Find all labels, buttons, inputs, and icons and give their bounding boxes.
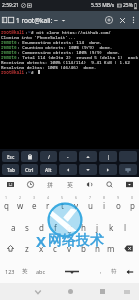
staticText: p — [130, 200, 135, 211]
staticText: Alt — [45, 167, 52, 173]
button[interactable]: Switch keyboard — [118, 283, 136, 300]
button[interactable]: Shift — [0, 237, 20, 260]
button[interactable]: Paste — [21, 151, 38, 162]
button[interactable]: v — [62, 237, 76, 260]
staticText: / — [48, 154, 50, 160]
button[interactable]: x — [34, 237, 48, 260]
button[interactable] — [119, 151, 137, 162]
button[interactable]: d — [34, 214, 48, 237]
staticText: 25% — [123, 2, 133, 9]
staticText: # — [31, 69, 37, 74]
staticText: remote — [1, 54, 17, 59]
staticText: remote — [1, 49, 17, 54]
button[interactable]: Left — [59, 164, 77, 175]
staticText: 5.53 MB/s — [91, 2, 115, 9]
staticText: v — [67, 243, 72, 254]
staticText: g — [67, 222, 72, 233]
staticText: X — [36, 231, 47, 251]
staticText: 6 — [75, 195, 78, 200]
button[interactable]: Home — [54, 283, 86, 300]
button[interactable]: h — [76, 214, 90, 237]
button[interactable]: b — [76, 237, 90, 260]
staticText: 4 — [47, 195, 50, 200]
staticText: ， — [98, 268, 104, 275]
button[interactable]: 1 — [0, 192, 13, 214]
staticText: n — [95, 243, 100, 254]
button[interactable]: Ctrl — [21, 164, 38, 175]
button[interactable]: l — [118, 214, 132, 237]
button[interactable]: ， — [94, 260, 107, 283]
button[interactable]: f — [48, 214, 62, 237]
button[interactable]: z — [20, 237, 34, 260]
staticText: Cloning into 'PhoneSploit'... — [1, 34, 76, 39]
button[interactable]: 9 — [111, 192, 125, 214]
staticText: 3 — [33, 195, 36, 200]
staticText: m — [107, 243, 115, 254]
button[interactable]: 英 — [63, 177, 77, 192]
staticText: c — [53, 243, 57, 254]
staticText: Tab — [7, 167, 15, 173]
button[interactable]: n — [90, 237, 104, 260]
staticText: Ctrl — [25, 167, 34, 173]
button[interactable]: c — [48, 237, 62, 260]
button[interactable]: 6 — [69, 192, 83, 214]
button[interactable]: 拼 — [43, 177, 57, 192]
button[interactable]: 4 — [41, 192, 55, 214]
button[interactable]: Emoji — [3, 177, 17, 192]
staticText: u — [88, 200, 93, 211]
button[interactable]: 英 — [18, 260, 32, 283]
button[interactable]: 符 — [107, 260, 121, 283]
button[interactable]: m — [104, 237, 118, 260]
button[interactable]: 0 — [125, 192, 139, 214]
staticText: : Enumerating objects: 114, done. — [17, 39, 103, 44]
button[interactable]: 8 — [97, 192, 111, 214]
button[interactable]: Alt — [40, 164, 57, 175]
staticText: q — [4, 200, 9, 211]
button[interactable]: 123 — [1, 260, 18, 283]
button[interactable]: 3 — [27, 192, 41, 214]
button[interactable]: Close session — [116, 11, 129, 29]
staticText: 拼 — [47, 181, 53, 189]
button[interactable]: s — [20, 214, 34, 237]
button[interactable]: Enter — [121, 260, 138, 283]
staticText: 7 — [89, 195, 92, 200]
staticText: Receiving objects: 100% (114/114), 9.41 … — [1, 59, 139, 64]
button[interactable]: Down — [79, 164, 97, 175]
button[interactable]: k — [104, 214, 118, 237]
staticText: 9 — [117, 195, 120, 200]
staticText: z — [25, 243, 29, 254]
staticText: x — [39, 243, 44, 254]
staticText: j — [96, 222, 99, 233]
button[interactable]: - — [59, 151, 77, 162]
button[interactable]: Space — [49, 260, 94, 283]
staticText: t — [61, 200, 64, 211]
button[interactable]: Up — [79, 151, 97, 162]
staticText: | — [107, 154, 110, 160]
button[interactable]: Back — [22, 283, 54, 300]
button[interactable]: New session — [102, 11, 116, 29]
button[interactable]: 7 — [83, 192, 97, 214]
button[interactable]: abc — [32, 260, 49, 283]
button[interactable]: Tab — [2, 164, 19, 175]
button[interactable]: Search — [102, 177, 116, 192]
staticText: 8 — [103, 195, 106, 200]
button[interactable]: 2 — [13, 192, 27, 214]
button[interactable]: g — [62, 214, 76, 237]
button[interactable]: Hide keyboard — [119, 164, 137, 175]
button[interactable]: Collapse — [122, 177, 136, 192]
button[interactable]: More options — [129, 11, 138, 29]
button[interactable]: Voice — [82, 177, 96, 192]
staticText: 123 — [5, 268, 15, 275]
button[interactable]: Recent — [23, 177, 37, 192]
button[interactable]: | — [99, 151, 117, 162]
staticText: b — [81, 243, 86, 254]
button[interactable]: Backspace — [118, 237, 139, 260]
button[interactable]: a — [7, 214, 20, 237]
button[interactable]: Right — [99, 164, 117, 175]
button[interactable]: / — [40, 151, 57, 162]
staticText: : Compressing objects: 100% (9/9), done. — [17, 49, 121, 54]
button[interactable]: j — [90, 214, 104, 237]
button[interactable]: 5 — [55, 192, 69, 214]
button[interactable]: Esc — [2, 151, 19, 162]
button[interactable]: Recents — [86, 283, 118, 300]
